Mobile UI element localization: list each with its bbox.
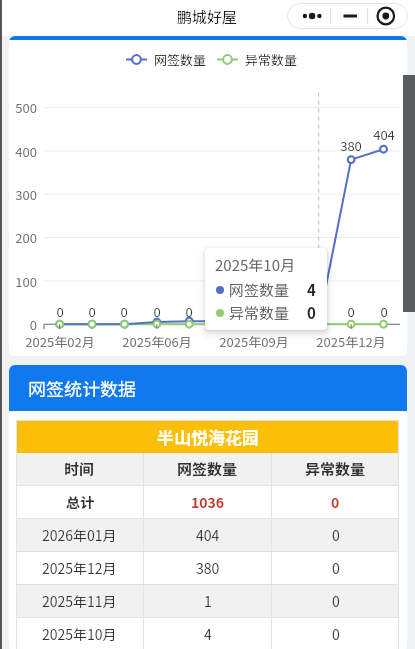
staticText: 1036 — [191, 492, 225, 512]
staticText: 4 — [204, 624, 212, 644]
staticText: 时间 — [64, 458, 95, 480]
staticText: 404 — [196, 525, 220, 545]
staticText: 网签数量 — [229, 279, 290, 301]
staticText: 1 — [204, 591, 212, 611]
staticText: 0 — [182, 302, 262, 321]
button[interactable]: 2025年10月 — [16, 618, 399, 649]
button[interactable]: 时间 — [16, 453, 399, 485]
staticText: 0 — [311, 302, 391, 321]
staticText: 网签数量 — [177, 458, 238, 480]
staticText: 2025年11月 — [42, 591, 117, 611]
staticText: 0 — [84, 302, 164, 321]
button[interactable]: 2025年11月 — [16, 585, 399, 617]
staticText: 300 — [9, 185, 37, 204]
staticText: 0 — [332, 525, 340, 545]
staticText: 0 — [214, 302, 294, 321]
staticText: 半山悦海花园 — [157, 424, 259, 449]
staticText: 400 — [9, 142, 37, 161]
button[interactable]: 总计 — [16, 486, 399, 518]
button[interactable]: 网签统计数据 — [9, 365, 407, 411]
staticText: 0 — [344, 302, 407, 321]
staticText: 2025年10月 — [215, 254, 295, 276]
staticText: 0 — [9, 315, 37, 334]
staticText: 总计 — [66, 492, 94, 512]
staticText: 网签统计数据 — [28, 375, 136, 401]
staticText: 0 — [332, 624, 340, 644]
staticText: 2025年06月 — [112, 332, 202, 351]
staticText: 200 — [9, 228, 37, 247]
staticText: 2025年02月 — [15, 332, 105, 351]
staticText: 0 — [149, 302, 229, 321]
staticText: 0 — [246, 302, 326, 321]
staticText: 100 — [9, 272, 37, 291]
button[interactable]: 2025年12月 — [16, 552, 399, 584]
staticText: 2025年10月 — [42, 624, 117, 644]
staticText: 0 — [331, 492, 340, 512]
staticText: 网签数量 — [154, 50, 207, 69]
staticText: 2026年01月 — [42, 525, 117, 545]
staticText: 0 — [332, 558, 340, 578]
button[interactable]: Mini program menu — [287, 3, 408, 29]
staticText: 380 — [196, 558, 220, 578]
staticText: 0 — [332, 591, 340, 611]
staticText: 0 — [307, 302, 316, 324]
staticText: 404 — [344, 125, 407, 144]
staticText: 0 — [117, 302, 197, 321]
staticText: 500 — [9, 98, 37, 117]
staticText: 鹏城好屋 — [177, 6, 238, 28]
staticText: 380 — [311, 136, 391, 155]
staticText: 2025年12月 — [306, 332, 396, 351]
staticText: 0 — [20, 302, 100, 321]
staticText: 4 — [307, 279, 316, 301]
button[interactable]: 2026年01月 — [16, 519, 399, 551]
staticText: 异常数量 — [245, 50, 298, 69]
staticText: 2025年09月 — [209, 332, 299, 351]
staticText: 异常数量 — [305, 458, 366, 480]
staticText: 0 — [52, 302, 132, 321]
staticText: 2025年12月 — [42, 558, 117, 578]
staticText: 异常数量 — [229, 302, 290, 324]
